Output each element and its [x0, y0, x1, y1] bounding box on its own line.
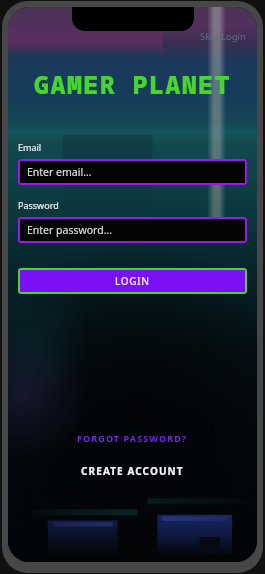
staticText: Enter password... — [27, 223, 113, 237]
staticText: LOGIN — [115, 274, 150, 288]
staticText: CREATE ACCOUNT — [81, 464, 184, 478]
staticText: Skip Login — [200, 30, 246, 43]
staticText: GAMER PLANET — [14, 67, 251, 101]
button[interactable]: CREATE ACCOUNT — [8, 464, 257, 478]
staticText: Password — [18, 199, 59, 211]
button[interactable]: Skip Login — [197, 28, 249, 45]
staticText: FORGOT PASSWORD? — [77, 432, 188, 444]
staticText: Enter email... — [27, 165, 92, 179]
button[interactable]: LOGIN — [18, 268, 247, 294]
button[interactable]: Enter password... — [18, 217, 247, 243]
staticText: Email — [18, 141, 42, 153]
button[interactable]: Enter email... — [18, 159, 247, 185]
button[interactable]: FORGOT PASSWORD? — [8, 432, 257, 444]
